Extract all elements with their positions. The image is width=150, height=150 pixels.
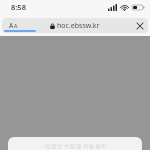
button[interactable]: 내 정보 수집 및 이용 동의 (8, 137, 142, 150)
staticText: 내 정보 수집 및 이용 동의 (44, 142, 107, 150)
button[interactable]: Text size options (2, 18, 24, 33)
button[interactable]: Stop loading (132, 18, 148, 33)
button[interactable]: hoc.ebssw.kr (50, 21, 100, 31)
staticText: A (14, 23, 18, 30)
staticText: 8:58 (11, 2, 26, 12)
staticText: hoc.ebssw.kr (57, 21, 100, 31)
staticText: A (9, 21, 14, 30)
